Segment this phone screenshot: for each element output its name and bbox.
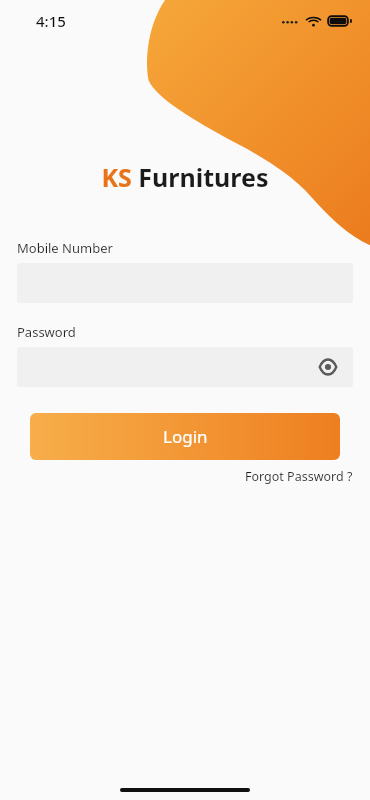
staticText: Mobile Number — [17, 239, 113, 257]
staticText: 4:15 — [36, 11, 66, 31]
staticText: Login — [163, 425, 208, 448]
button[interactable]: Forgot Password ? — [245, 468, 353, 485]
button[interactable]: Show password — [313, 352, 343, 382]
staticText: KS Furnitures — [101, 160, 269, 194]
button[interactable]: Login — [30, 413, 340, 460]
staticText: Password — [17, 323, 76, 341]
staticText: Forgot Password ? — [245, 468, 353, 485]
button[interactable]: Show password — [17, 347, 353, 387]
